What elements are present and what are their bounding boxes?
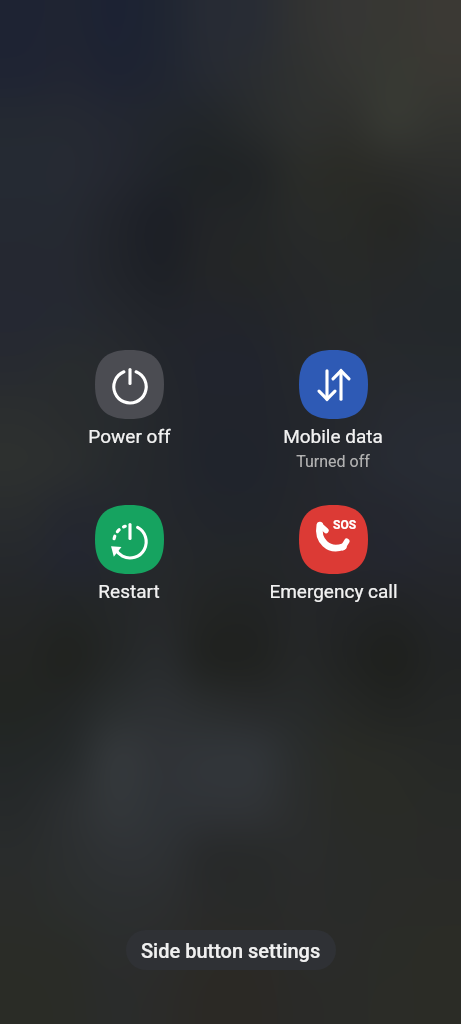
staticText: Turned off (296, 452, 370, 471)
other: Restart (110, 520, 150, 560)
staticText: Restart (98, 580, 160, 602)
staticText: Mobile data (283, 425, 383, 447)
staticText: Power off (88, 425, 171, 447)
button[interactable]: Emergency call (263, 505, 403, 602)
staticText: Emergency call (269, 580, 398, 602)
button[interactable]: Restart (59, 505, 199, 602)
button[interactable]: Side button settings (126, 930, 336, 970)
button[interactable]: Mobile data (263, 350, 403, 471)
other: Emergency call (314, 520, 354, 560)
other: Mobile data (314, 365, 354, 405)
staticText: SOS (333, 518, 357, 532)
button[interactable]: Power off (59, 350, 199, 447)
other: Power off (110, 365, 150, 405)
staticText: Side button settings (141, 939, 321, 962)
